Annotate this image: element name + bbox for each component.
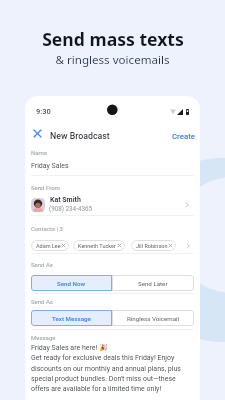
- button[interactable]: Send Now: [31, 275, 112, 291]
- other: Open: [184, 242, 192, 250]
- button[interactable]: Adam Lee: [31, 240, 69, 251]
- button[interactable]: Ringless Voicemail: [112, 310, 194, 326]
- staticText: Send As: [31, 298, 53, 305]
- staticText: Adam Lee: [36, 243, 61, 249]
- button[interactable]: Close: [31, 127, 44, 140]
- staticText: Text Message: [52, 315, 91, 322]
- staticText: Send mass texts: [42, 27, 184, 51]
- staticText: Contacts | 3: [31, 225, 63, 232]
- button[interactable]: Kenneth Tucker: [73, 240, 125, 251]
- staticText: Friday Sales are here! 🎉: [31, 344, 108, 352]
- staticText: Name: [31, 149, 47, 156]
- staticText: 9:30: [36, 107, 51, 116]
- other: Open: [183, 201, 191, 209]
- staticText: Message: [31, 334, 56, 341]
- staticText: & ringless voicemails: [55, 52, 170, 68]
- staticText: Send As: [31, 261, 53, 268]
- staticText: Send Later: [138, 280, 168, 287]
- staticText: (908) 234-4365: [49, 205, 93, 212]
- staticText: Kat Smith: [50, 196, 81, 204]
- button[interactable]: Send Later: [112, 275, 194, 291]
- button[interactable]: Create: [169, 129, 198, 144]
- staticText: Create: [172, 132, 195, 141]
- button[interactable]: Kat Smith: [25, 196, 200, 213]
- staticText: Ringless Voicemail: [127, 315, 180, 322]
- staticText: Send Now: [57, 280, 86, 287]
- button[interactable]: Jill Robinson: [131, 240, 176, 251]
- staticText: New Broadcast: [50, 131, 110, 141]
- staticText: Get ready for exclusive deals this Frida…: [31, 354, 181, 392]
- staticText: Jill Robinson: [136, 243, 168, 249]
- staticText: Send From: [31, 184, 60, 191]
- staticText: Friday Sales: [31, 162, 69, 170]
- staticText: Kenneth Tucker: [78, 243, 116, 249]
- button[interactable]: Text Message: [31, 310, 112, 326]
